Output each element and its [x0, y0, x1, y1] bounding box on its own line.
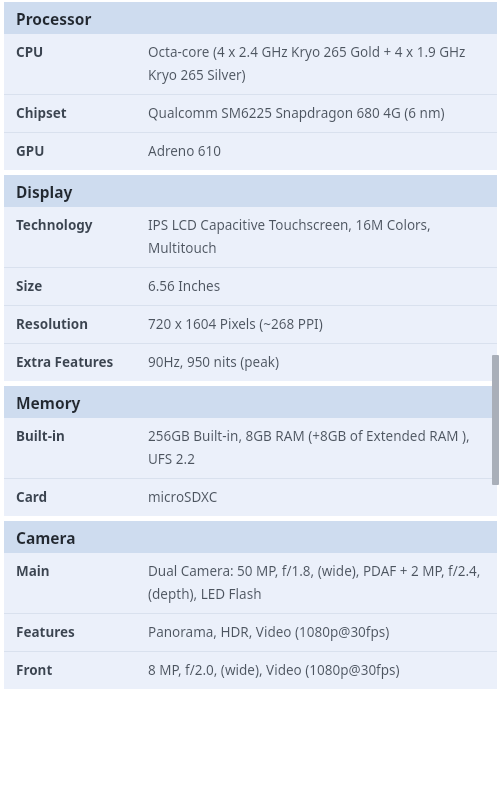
button[interactable]: Front — [4, 652, 497, 689]
staticText: Resolution — [16, 315, 89, 333]
button[interactable]: Built-in — [4, 418, 497, 478]
staticText: Extra Features — [16, 353, 114, 371]
button[interactable]: Extra Features — [4, 344, 497, 381]
staticText: Memory — [16, 392, 81, 413]
staticText: Qualcomm SM6225 Snapdragon 680 4G (6 nm) — [148, 104, 489, 122]
staticText: IPS LCD Capacitive Touchscreen, 16M Colo… — [148, 216, 489, 257]
button[interactable]: Technology — [4, 207, 497, 267]
button[interactable]: Card — [4, 479, 497, 516]
staticText: Processor — [16, 8, 92, 29]
staticText: Chipset — [16, 104, 67, 122]
staticText: Front — [16, 661, 53, 679]
button[interactable]: Display — [4, 175, 497, 207]
staticText: CPU — [16, 43, 44, 61]
staticText: 720 x 1604 Pixels (~268 PPI) — [148, 315, 489, 333]
staticText: Features — [16, 623, 75, 641]
button[interactable]: Chipset — [4, 95, 497, 132]
button[interactable]: Camera — [4, 521, 497, 553]
staticText: Built-in — [16, 427, 65, 445]
staticText: Panorama, HDR, Video (1080p@30fps) — [148, 623, 489, 641]
staticText: 90Hz, 950 nits (peak) — [148, 353, 489, 371]
staticText: Camera — [16, 527, 76, 548]
staticText: Adreno 610 — [148, 142, 489, 160]
button[interactable]: Resolution — [4, 306, 497, 343]
button[interactable]: GPU — [4, 133, 497, 170]
button[interactable]: Processor — [4, 2, 497, 34]
staticText: Dual Camera: 50 MP, f/1.8, (wide), PDAF … — [148, 562, 489, 603]
staticText: Main — [16, 562, 50, 580]
staticText: Technology — [16, 216, 93, 234]
staticText: microSDXC — [148, 488, 489, 506]
button[interactable]: Main — [4, 553, 497, 613]
staticText: Size — [16, 277, 43, 295]
button[interactable]: CPU — [4, 34, 497, 94]
staticText: GPU — [16, 142, 45, 160]
staticText: Octa-core (4 x 2.4 GHz Kryo 265 Gold + 4… — [148, 43, 489, 84]
staticText: Display — [16, 181, 73, 202]
button[interactable]: Memory — [4, 386, 497, 418]
staticText: 8 MP, f/2.0, (wide), Video (1080p@30fps) — [148, 661, 489, 679]
button[interactable]: Size — [4, 268, 497, 305]
staticText: 256GB Built-in, 8GB RAM (+8GB of Extende… — [148, 427, 489, 468]
staticText: 6.56 Inches — [148, 277, 489, 295]
staticText: Card — [16, 488, 48, 506]
button[interactable]: Features — [4, 614, 497, 651]
